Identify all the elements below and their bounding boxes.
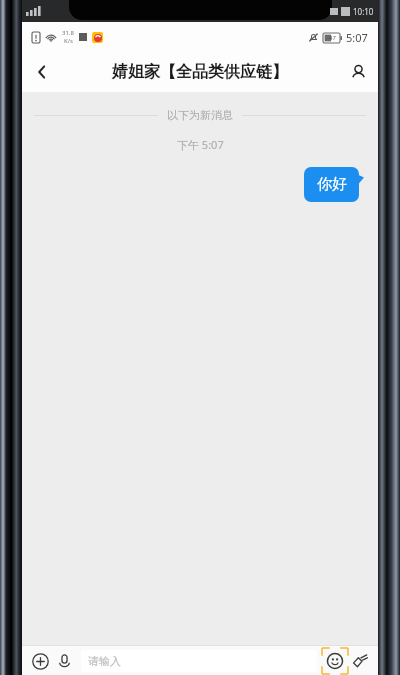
button[interactable]: 你好 xyxy=(304,167,364,202)
button[interactable]: 请输入 xyxy=(81,650,317,672)
staticText: 你好 xyxy=(317,175,347,194)
staticText: 31.8 xyxy=(62,29,74,37)
button[interactable]: Emoji xyxy=(322,648,348,674)
staticText: 以下为新消息 xyxy=(167,108,233,122)
staticText: 5:07 xyxy=(346,30,368,45)
button[interactable]: Contact profile xyxy=(338,52,378,92)
staticText: 下午 5:07 xyxy=(177,137,224,152)
staticText: K/s xyxy=(64,37,73,45)
staticText: 婧姐家【全品类供应链】 xyxy=(112,62,288,82)
staticText: 请输入 xyxy=(88,654,121,668)
staticText: 10:10 xyxy=(353,6,374,17)
button[interactable]: Voice message xyxy=(52,649,76,673)
staticText: 47 xyxy=(329,34,336,42)
button[interactable]: Quick reply xyxy=(348,649,372,673)
button[interactable]: Add xyxy=(28,649,52,673)
button[interactable]: Back xyxy=(22,52,62,92)
